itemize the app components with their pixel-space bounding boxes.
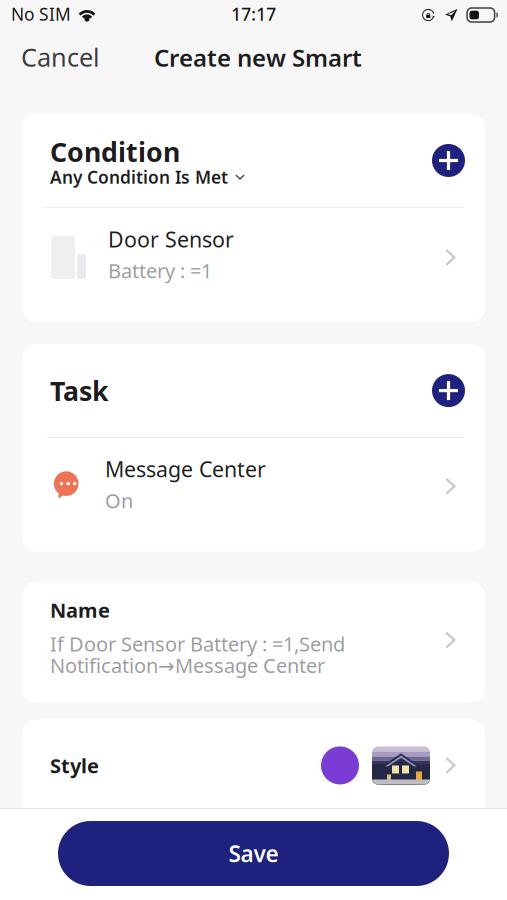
staticText: Battery : =1: [108, 257, 212, 284]
staticText: On: [105, 487, 133, 514]
staticText: Any Condition Is Met: [50, 165, 228, 188]
staticText: Name: [50, 597, 110, 623]
button[interactable]: Name: [22, 582, 485, 702]
staticText: Door Sensor: [108, 225, 234, 253]
staticText: Condition: [50, 134, 180, 169]
staticText: Cancel: [21, 40, 100, 74]
staticText: Create new Smart: [154, 41, 362, 73]
button[interactable]: Add condition: [432, 134, 465, 177]
staticText: If Door Sensor Battery : =1,Send: [50, 630, 345, 657]
button[interactable]: Add task: [432, 374, 465, 407]
staticText: Style: [50, 752, 99, 779]
button[interactable]: Save: [58, 821, 449, 886]
staticText: 17:17: [231, 2, 276, 25]
staticText: No SIM: [11, 2, 71, 25]
staticText: Task: [50, 373, 109, 408]
staticText: Save: [228, 838, 278, 868]
staticText: Message Center: [105, 455, 266, 483]
staticText: Notification→Message Center: [50, 652, 325, 678]
button[interactable]: Cancel: [11, 32, 110, 82]
button[interactable]: Door Sensor: [22, 221, 485, 288]
button[interactable]: Style: [22, 719, 485, 829]
button[interactable]: Message Center: [22, 452, 485, 517]
